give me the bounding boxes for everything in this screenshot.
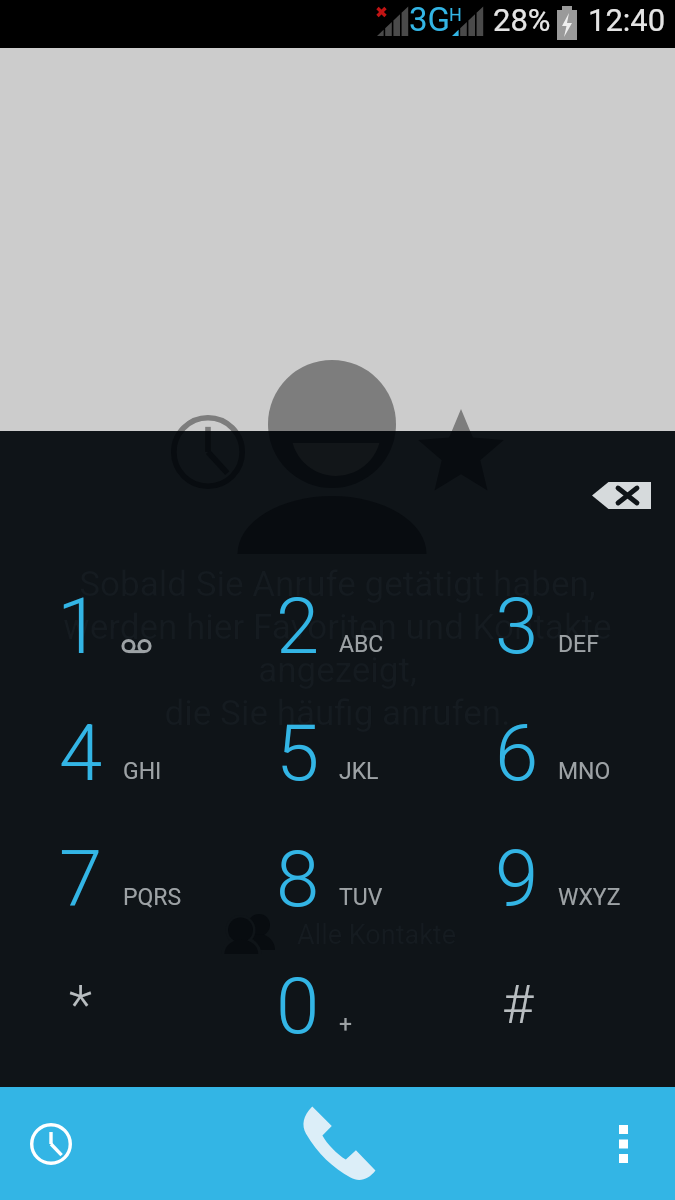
button[interactable]: 8	[225, 827, 450, 953]
button[interactable]: 4	[0, 701, 225, 827]
staticText: 0	[276, 961, 320, 1052]
button[interactable]: #	[450, 954, 675, 1080]
staticText: 3G	[409, 0, 451, 39]
button[interactable]: 0	[225, 954, 450, 1080]
staticText: GHI	[123, 758, 162, 785]
staticText: 5	[276, 708, 320, 799]
staticText: 28%	[493, 2, 551, 38]
staticText: H	[449, 4, 462, 25]
staticText: #	[502, 973, 534, 1036]
staticText: 1	[57, 581, 101, 672]
button[interactable]: 3	[450, 574, 675, 700]
button[interactable]: More options	[583, 1087, 663, 1200]
staticText: 2	[276, 581, 320, 672]
button[interactable]: 1	[0, 574, 225, 700]
staticText: 6	[495, 708, 539, 799]
staticText: 3	[495, 581, 539, 672]
staticText: TUV	[339, 884, 383, 911]
staticText: 4	[59, 708, 103, 799]
staticText: ABC	[339, 631, 384, 658]
staticText: WXYZ	[558, 884, 621, 911]
staticText: 8	[276, 834, 320, 925]
button[interactable]: 7	[0, 827, 225, 953]
button[interactable]: 6	[450, 701, 675, 827]
staticText: DEF	[558, 631, 599, 658]
staticText: +	[339, 1011, 353, 1038]
staticText: PQRS	[123, 884, 182, 911]
staticText: 9	[495, 834, 539, 925]
button[interactable]: Call history	[8, 1087, 94, 1200]
staticText: Sobald Sie Anrufe getätigt haben, werden…	[20, 564, 655, 734]
staticText: 12:40	[588, 2, 666, 38]
staticText: 7	[59, 834, 103, 925]
button[interactable]: Dialpad	[280, 1087, 396, 1200]
staticText: JKL	[339, 758, 379, 785]
staticText: MNO	[558, 758, 611, 785]
staticText: *	[69, 973, 92, 1036]
button[interactable]: 5	[225, 701, 450, 827]
button[interactable]: 2	[225, 574, 450, 700]
button[interactable]: *	[0, 954, 225, 1080]
button[interactable]: 9	[450, 827, 675, 953]
button[interactable]: Backspace	[575, 460, 665, 530]
